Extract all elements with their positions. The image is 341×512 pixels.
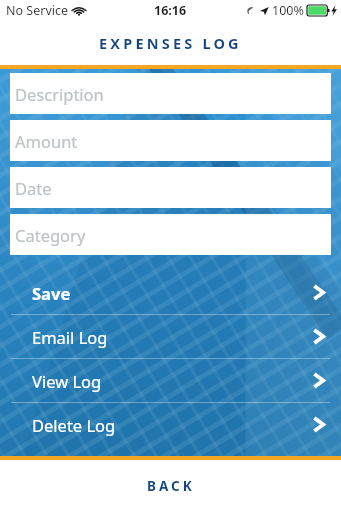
button[interactable]: Description [10, 73, 331, 114]
staticText: BACK [147, 477, 195, 495]
staticText: Delete Log [32, 414, 116, 436]
staticText: Category [15, 224, 86, 246]
staticText: Description [15, 83, 104, 105]
other: Open [312, 372, 325, 389]
staticText: Amount [15, 130, 78, 152]
staticText: Date [15, 177, 52, 199]
button[interactable]: Delete Log [0, 403, 341, 446]
staticText: 16:16 [154, 2, 187, 19]
button[interactable]: BACK [0, 460, 341, 512]
other: Open [312, 328, 325, 345]
button[interactable]: View Log [0, 359, 341, 402]
button[interactable]: Category [10, 214, 331, 255]
staticText: View Log [32, 370, 102, 392]
button[interactable]: Date [10, 167, 331, 208]
staticText: EXPENSES LOG [99, 33, 242, 53]
button[interactable]: Save [0, 271, 341, 314]
other: Open [312, 284, 325, 301]
button[interactable]: Amount [10, 120, 331, 161]
staticText: No Service [6, 2, 69, 19]
other: Open [312, 416, 325, 433]
staticText: Email Log [32, 326, 108, 348]
staticText: Save [32, 282, 71, 304]
button[interactable]: Email Log [0, 315, 341, 358]
staticText: 100% [272, 2, 304, 19]
